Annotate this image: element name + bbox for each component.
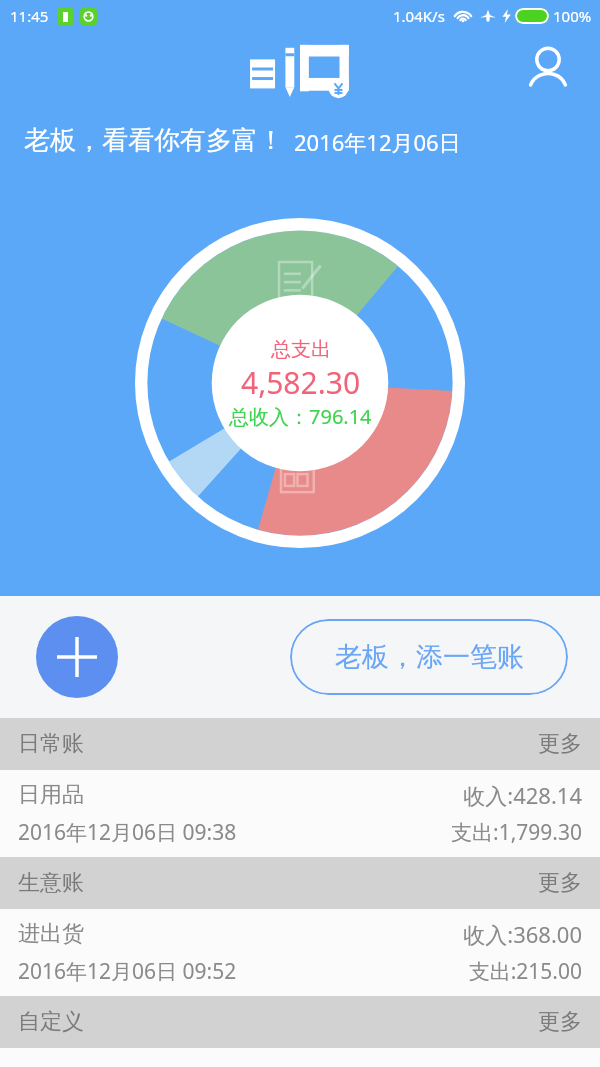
staticText: 生意账: [18, 869, 538, 897]
staticText: 100%: [553, 6, 592, 26]
button[interactable]: 老板，添一笔账: [290, 619, 568, 695]
staticText: 收入:368.00: [463, 919, 582, 949]
staticText: 总支出: [271, 337, 331, 362]
staticText: 支出:215.00: [468, 957, 582, 986]
staticText: 2016年12月06日 09:52: [18, 957, 468, 986]
staticText: 更多: [538, 869, 582, 897]
staticText: 收入:428.14: [463, 780, 582, 810]
staticText: 老板，看看你有多富！: [24, 124, 284, 157]
button[interactable]: 生意账: [0, 857, 600, 909]
staticText: 日用品: [18, 781, 463, 809]
staticText: 更多: [538, 730, 582, 758]
button[interactable]: 日用品: [0, 770, 600, 857]
button[interactable]: Profile: [520, 41, 576, 97]
button[interactable]: 自定义: [0, 996, 600, 1048]
staticText: 更多: [538, 1008, 582, 1036]
staticText: 支出:1,799.30: [451, 818, 582, 847]
staticText: 2016年12月06日 09:38: [18, 818, 451, 847]
staticText: 11:45: [10, 6, 49, 26]
button[interactable]: 日常账: [0, 718, 600, 770]
staticText: 总收入：796.14: [229, 403, 372, 430]
staticText: 老板，添一笔账: [335, 640, 524, 674]
staticText: 进出货: [18, 920, 463, 948]
staticText: 1.04K/s: [393, 6, 445, 26]
staticText: 自定义: [18, 1008, 538, 1036]
button[interactable]: 进出货: [0, 909, 600, 996]
staticText: 2016年12月06日: [294, 127, 461, 157]
button[interactable]: Add: [36, 616, 118, 698]
staticText: 日常账: [18, 730, 538, 758]
staticText: 4,582.30: [241, 362, 361, 403]
